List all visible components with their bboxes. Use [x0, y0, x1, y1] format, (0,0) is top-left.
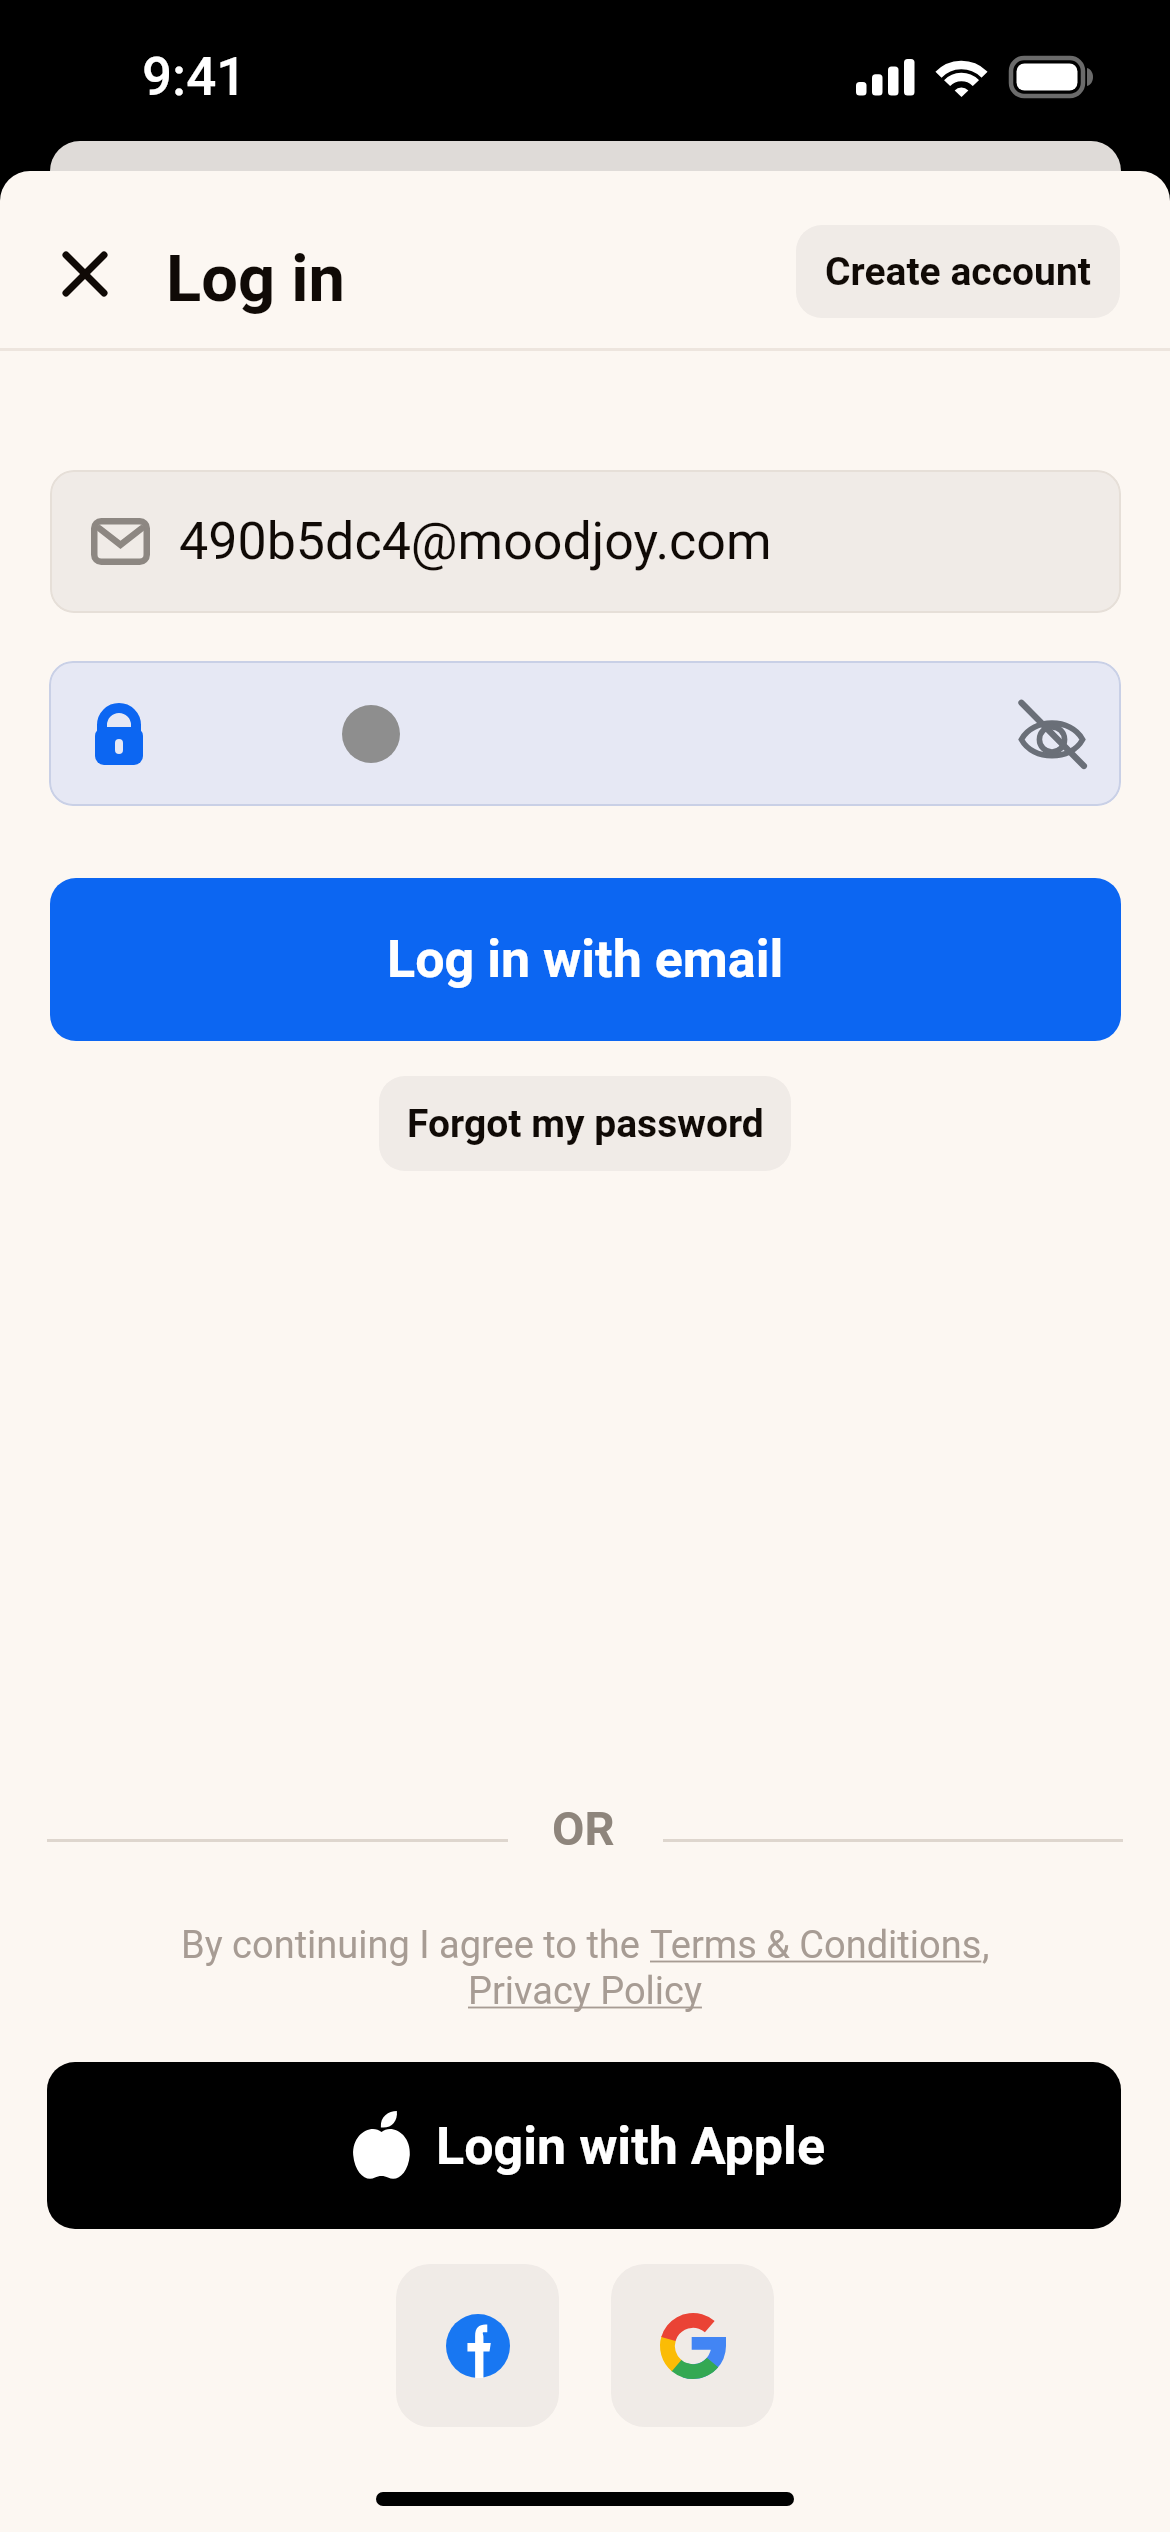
button[interactable]: Close [58, 247, 112, 301]
button[interactable]: Show password [49, 661, 1121, 806]
staticText: OR [552, 1801, 615, 1856]
button[interactable]: Create account [796, 225, 1120, 318]
button[interactable]: 490b5dc4@moodjoy.com [50, 470, 1121, 613]
button[interactable]: Login with Apple [47, 2062, 1121, 2229]
staticText: Terms & Conditions [650, 1923, 982, 1968]
button[interactable]: Terms & Conditions [650, 1923, 982, 1968]
button[interactable]: Show password [1006, 688, 1098, 780]
button[interactable]: Privacy Policy [468, 1969, 702, 2014]
staticText: Login with Apple [436, 2116, 826, 2177]
staticText: Log in [166, 241, 345, 317]
staticText: 490b5dc4@moodjoy.com [179, 511, 772, 572]
button[interactable]: Log in with email [50, 878, 1121, 1041]
staticText: 9:41 [142, 46, 247, 108]
button[interactable]: Login with Facebook [396, 2264, 559, 2427]
button[interactable]: Login with Google [611, 2264, 774, 2427]
staticText: Forgot my password [407, 1101, 764, 1147]
staticText: By continuing I agree to the [181, 1923, 650, 1968]
button[interactable]: Forgot my password [379, 1076, 791, 1171]
staticText: Privacy Policy [468, 1969, 702, 2014]
staticText: Create account [825, 249, 1091, 295]
staticText: , [982, 1923, 990, 1968]
staticText: Log in with email [387, 929, 784, 990]
